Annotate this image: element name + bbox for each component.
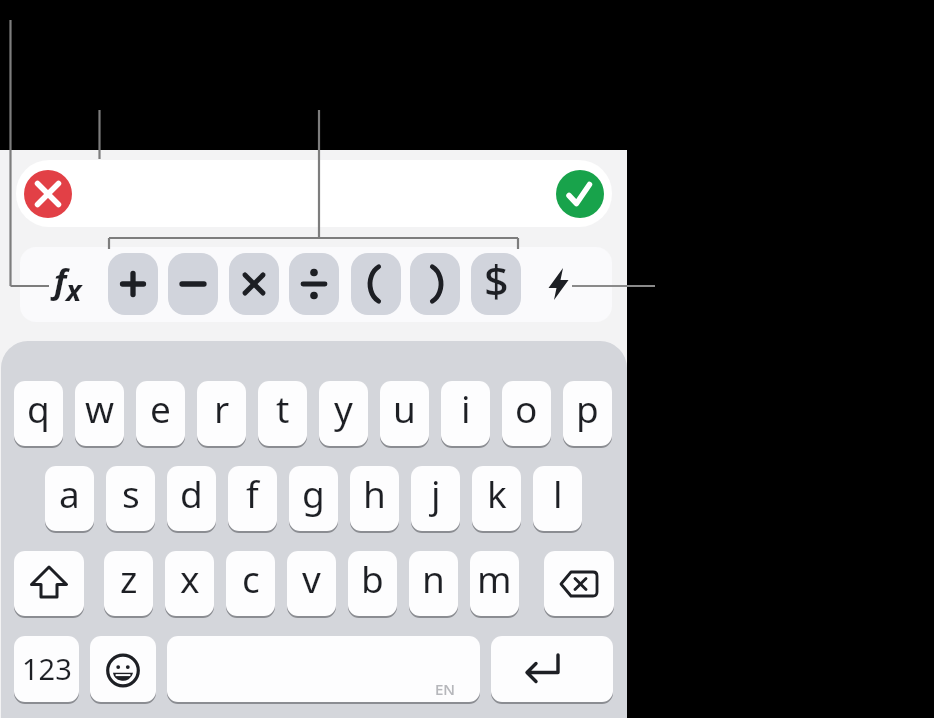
staticText: g (302, 468, 325, 518)
staticText: y (334, 383, 353, 433)
staticText: 123 (22, 649, 72, 688)
button[interactable]: f (40, 250, 94, 318)
button[interactable]: m (470, 551, 519, 616)
button[interactable] (24, 170, 72, 218)
button[interactable]: w (75, 381, 124, 446)
staticText: EN (435, 679, 455, 699)
staticText: n (422, 553, 445, 603)
button[interactable] (168, 253, 218, 315)
button[interactable] (491, 636, 613, 702)
button[interactable]: y (319, 381, 368, 446)
button[interactable]: $ (471, 253, 521, 315)
button[interactable]: r (197, 381, 246, 446)
staticText: c (242, 553, 260, 603)
staticText: v (302, 553, 321, 603)
button[interactable]: 123 (14, 636, 79, 702)
button[interactable]: h (350, 466, 399, 531)
staticText: s (122, 468, 140, 518)
button[interactable]: v (287, 551, 336, 616)
staticText: f (246, 468, 259, 518)
button[interactable] (16, 160, 612, 227)
button[interactable]: o (502, 381, 551, 446)
button[interactable]: g (289, 466, 338, 531)
button[interactable] (289, 253, 339, 315)
button[interactable] (14, 551, 84, 616)
button[interactable] (90, 636, 156, 702)
button[interactable]: f (228, 466, 277, 531)
staticText: w (85, 383, 115, 433)
staticText: l (553, 468, 563, 518)
staticText: h (363, 468, 386, 518)
button[interactable]: b (348, 551, 397, 616)
button[interactable] (410, 253, 460, 315)
staticText: f (54, 258, 67, 303)
staticText: i (461, 383, 471, 433)
staticText: b (361, 553, 384, 603)
button[interactable]: e (136, 381, 185, 446)
button[interactable] (351, 253, 401, 315)
staticText: j (431, 468, 441, 518)
staticText: d (180, 468, 203, 518)
button[interactable]: u (380, 381, 429, 446)
staticText: x (66, 270, 82, 309)
button[interactable]: l (533, 466, 582, 531)
button[interactable]: k (472, 466, 521, 531)
staticText: t (276, 383, 290, 433)
staticText: e (150, 383, 171, 433)
button[interactable] (108, 253, 158, 315)
button[interactable]: s (106, 466, 155, 531)
staticText: m (477, 553, 512, 603)
button[interactable]: d (167, 466, 216, 531)
button[interactable]: q (14, 381, 63, 446)
staticText: o (515, 383, 538, 433)
staticText: q (27, 383, 50, 433)
button[interactable]: z (104, 551, 153, 616)
staticText: x (180, 553, 200, 603)
button[interactable]: i (441, 381, 490, 446)
staticText: p (576, 383, 599, 433)
button[interactable]: x (165, 551, 214, 616)
button[interactable]: n (409, 551, 458, 616)
staticText: z (120, 553, 138, 603)
button[interactable]: p (563, 381, 612, 446)
button[interactable]: t (258, 381, 307, 446)
button[interactable] (556, 170, 604, 218)
button[interactable] (544, 551, 614, 616)
button[interactable]: a (45, 466, 94, 531)
staticText: $ (484, 253, 509, 310)
staticText: r (214, 383, 230, 433)
button[interactable]: j (411, 466, 460, 531)
button[interactable] (543, 254, 574, 312)
staticText: u (393, 383, 416, 433)
staticText: k (487, 468, 507, 518)
button[interactable] (167, 636, 480, 702)
button[interactable] (229, 253, 279, 315)
button[interactable]: c (226, 551, 275, 616)
staticText: a (59, 468, 80, 518)
